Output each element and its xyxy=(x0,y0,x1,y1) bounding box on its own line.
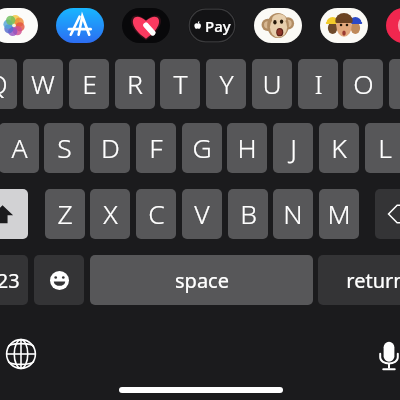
staticText: T xyxy=(173,66,188,102)
button[interactable]: C xyxy=(136,189,176,239)
button[interactable]: J xyxy=(273,123,313,173)
staticText: A xyxy=(11,130,28,166)
button[interactable]: X xyxy=(90,189,130,239)
staticText: W xyxy=(31,66,55,102)
button[interactable]: G xyxy=(182,123,222,173)
button[interactable]: T xyxy=(160,59,200,109)
staticText: B xyxy=(240,196,257,232)
staticText: X xyxy=(103,196,118,232)
button[interactable]: Memoji xyxy=(254,8,302,43)
button[interactable]: Health xyxy=(122,8,170,43)
staticText: O xyxy=(353,66,374,102)
button[interactable]: S xyxy=(44,123,84,173)
button[interactable]: Photos xyxy=(0,8,38,43)
staticText: E xyxy=(82,66,97,102)
staticText: V xyxy=(194,196,210,232)
button[interactable]: L xyxy=(365,123,400,173)
staticText: R xyxy=(127,66,143,102)
button[interactable]: F xyxy=(136,123,176,173)
staticText: N xyxy=(283,196,303,232)
staticText: Z xyxy=(57,196,73,232)
staticText: Q xyxy=(0,66,8,102)
staticText: 123 xyxy=(0,267,20,294)
button[interactable]: Apple Pay xyxy=(188,8,236,43)
staticText: G xyxy=(192,130,212,166)
button[interactable]: M xyxy=(319,189,359,239)
staticText: H xyxy=(237,130,257,166)
staticText: L xyxy=(378,130,392,166)
staticText: return xyxy=(346,267,400,294)
button[interactable]: return xyxy=(318,255,400,305)
button[interactable]: U xyxy=(252,59,292,109)
staticText: S xyxy=(57,130,72,166)
staticText: C xyxy=(148,196,165,232)
staticText: J xyxy=(290,130,297,166)
staticText: Y xyxy=(219,66,234,102)
button[interactable]: Z xyxy=(45,189,85,239)
button[interactable]: Music xyxy=(386,8,400,43)
button[interactable]: V xyxy=(182,189,222,239)
button[interactable]: H xyxy=(227,123,267,173)
button[interactable]: Dictation xyxy=(378,340,400,371)
button[interactable]: O xyxy=(343,59,383,109)
staticText: M xyxy=(327,196,351,232)
button[interactable]: E xyxy=(69,59,109,109)
staticText: F xyxy=(149,130,163,166)
button[interactable]: 123 xyxy=(0,255,28,305)
button[interactable]: Shift xyxy=(0,189,28,239)
staticText: D xyxy=(101,130,120,166)
button[interactable]: Emoji xyxy=(34,255,84,305)
button[interactable]: B xyxy=(228,189,268,239)
button[interactable]: Backspace xyxy=(375,189,400,239)
button[interactable]: space xyxy=(90,255,313,305)
button[interactable]: I xyxy=(298,59,338,109)
staticText: I xyxy=(314,66,323,102)
button[interactable]: P xyxy=(389,59,400,109)
button[interactable]: Y xyxy=(206,59,246,109)
button[interactable]: K xyxy=(319,123,359,173)
button[interactable]: W xyxy=(23,59,63,109)
staticText: Pay xyxy=(205,16,231,36)
button[interactable]: A xyxy=(0,123,39,173)
staticText: U xyxy=(262,66,282,102)
staticText: K xyxy=(331,130,347,166)
button[interactable]: Memoji group xyxy=(320,8,368,43)
button[interactable]: D xyxy=(90,123,130,173)
button[interactable]: N xyxy=(273,189,313,239)
staticText: space xyxy=(175,267,229,294)
button[interactable]: App Store xyxy=(56,8,104,43)
button[interactable]: R xyxy=(115,59,155,109)
button[interactable]: Next keyboard xyxy=(5,338,37,370)
button[interactable]: Q xyxy=(0,59,17,109)
